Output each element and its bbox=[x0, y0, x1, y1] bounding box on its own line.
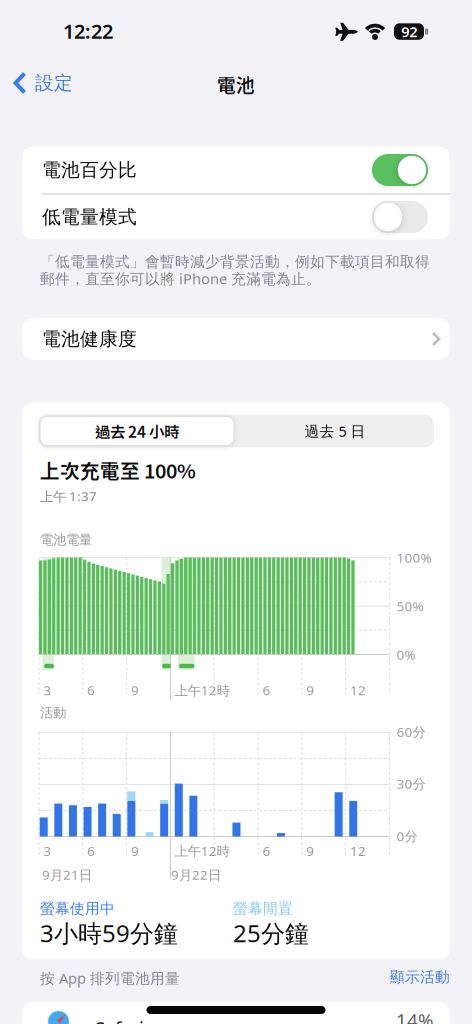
staticText: 12 bbox=[350, 842, 366, 860]
button[interactable]: 設定 bbox=[14, 71, 73, 94]
staticText: 電池 bbox=[217, 70, 255, 97]
staticText: 3 bbox=[43, 842, 51, 860]
staticText: 6 bbox=[262, 681, 270, 699]
button[interactable]: 低電量模式 bbox=[22, 194, 450, 239]
staticText: 電池電量 bbox=[40, 532, 92, 548]
staticText: 0分 bbox=[396, 827, 417, 845]
staticText: 12:22 bbox=[63, 18, 113, 44]
button[interactable]: 過去 5 日 bbox=[240, 416, 430, 445]
staticText: 上次充電至 100% bbox=[40, 455, 196, 484]
staticText: 3小時59分鐘 bbox=[40, 917, 178, 949]
staticText: 60分 bbox=[396, 723, 425, 741]
button[interactable]: 電池百分比 bbox=[22, 146, 450, 193]
staticText: 按 App 排列電池用量 bbox=[40, 968, 180, 988]
staticText: 50% bbox=[396, 597, 423, 615]
staticText: Safari bbox=[95, 1015, 144, 1024]
staticText: 「低電量模式」會暫時減少背景活動，例如下載項目和取得 bbox=[40, 253, 430, 271]
staticText: 12 bbox=[350, 681, 366, 699]
button[interactable]: 顯示活動 bbox=[330, 968, 450, 986]
staticText: 9 bbox=[131, 681, 139, 699]
staticText: 低電量模式 bbox=[42, 205, 137, 228]
staticText: 上午 1:37 bbox=[40, 487, 97, 505]
staticText: 螢幕閒置 bbox=[233, 899, 293, 917]
staticText: 設定 bbox=[35, 71, 73, 94]
staticText: 過去 24 小時 bbox=[95, 420, 179, 442]
staticText: 上午12時 bbox=[175, 681, 230, 699]
staticText: 活動 bbox=[40, 705, 66, 721]
staticText: 14% bbox=[396, 1007, 434, 1024]
staticText: 上午12時 bbox=[175, 842, 230, 860]
staticText: 9月22日 bbox=[171, 866, 221, 883]
staticText: 9月21日 bbox=[42, 866, 92, 883]
staticText: 電池健康度 bbox=[42, 327, 137, 350]
staticText: 9 bbox=[306, 681, 314, 699]
staticText: 0% bbox=[396, 646, 415, 663]
button[interactable]: 過去 24 小時 bbox=[40, 416, 234, 445]
staticText: 25分鐘 bbox=[233, 917, 309, 949]
staticText: 3 bbox=[43, 681, 51, 699]
staticText: 92 bbox=[401, 22, 417, 41]
staticText: 100% bbox=[396, 549, 431, 566]
button[interactable]: Safari bbox=[22, 1002, 450, 1024]
staticText: 9 bbox=[306, 842, 314, 860]
staticText: 電池百分比 bbox=[42, 158, 137, 181]
staticText: 6 bbox=[87, 842, 95, 860]
staticText: 6 bbox=[262, 842, 270, 860]
button[interactable]: 電池健康度 bbox=[22, 318, 450, 360]
staticText: 30分 bbox=[396, 775, 425, 792]
staticText: 9 bbox=[131, 842, 139, 860]
staticText: 顯示活動 bbox=[390, 968, 450, 986]
staticText: 郵件，直至你可以將 iPhone 充滿電為止。 bbox=[40, 269, 321, 288]
staticText: 過去 5 日 bbox=[304, 421, 365, 441]
staticText: 6 bbox=[87, 681, 95, 699]
staticText: 螢幕使用中 bbox=[40, 899, 115, 917]
